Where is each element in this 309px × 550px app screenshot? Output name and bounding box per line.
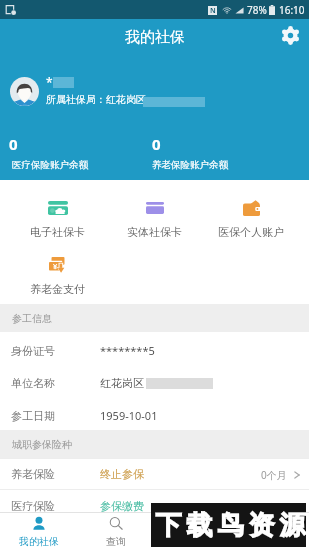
button[interactable]: 医保个人账户 [203,200,299,237]
button[interactable]: 办事 [155,513,232,550]
button[interactable]: 养老金支付 [9,257,105,294]
staticText: 参工信息 [12,312,52,325]
staticText: 医保个人账户 [218,225,284,237]
staticText: N [210,6,216,15]
staticText: 参工日期 [11,409,55,423]
button[interactable]: 参工日期 [0,397,309,430]
staticText: 78% [247,3,267,17]
staticText: 养老保险账户余额 [152,159,228,171]
staticText: 单位名称 [11,376,55,390]
staticText: 查询 [106,535,126,548]
staticText: 养老金支付 [30,282,85,294]
staticText: * [46,74,53,90]
staticText: 医疗保险账户余额 [12,159,88,171]
button[interactable]: 单位名称 [0,365,309,397]
staticText: 参保缴费 [100,499,144,512]
staticText: 0 [9,134,18,154]
button[interactable]: 养老保险 [0,458,309,489]
button[interactable]: 更多 [232,513,309,550]
staticText: 0 [152,134,161,154]
staticText: 身份证号 [11,344,55,358]
staticText: 我的社保 [19,535,59,548]
staticText: 红花岗区 [100,376,144,390]
staticText: 实体社保卡 [127,225,182,237]
button[interactable]: 我的社保 [0,513,77,550]
staticText: 更多 [261,535,281,548]
staticText: 办事 [184,535,204,548]
button[interactable]: 医疗保险 [0,489,309,512]
staticText: 养老保险 [11,467,55,481]
staticText: 城职参保险种 [12,438,72,451]
button[interactable]: 实体社保卡 [106,200,202,237]
button[interactable]: 身份证号 [0,332,309,365]
button[interactable]: 电子社保卡 [9,200,105,237]
staticText: 0个月 [261,500,287,512]
staticText: 0个月 [261,468,287,482]
staticText: 下载鸟资源 [153,509,308,542]
staticText: 所属社保局：红花岗区 [46,93,146,106]
button[interactable]: Settings [278,23,303,48]
staticText: 终止参保 [100,467,144,481]
staticText: 1959-10-01 [100,408,158,423]
staticText: 医疗保险 [11,499,55,512]
staticText: 16:10 [279,3,305,17]
button[interactable]: 查询 [77,513,154,550]
staticText: 我的社保 [125,28,185,47]
staticText: ********5 [100,343,155,358]
staticText: 电子社保卡 [30,225,85,237]
